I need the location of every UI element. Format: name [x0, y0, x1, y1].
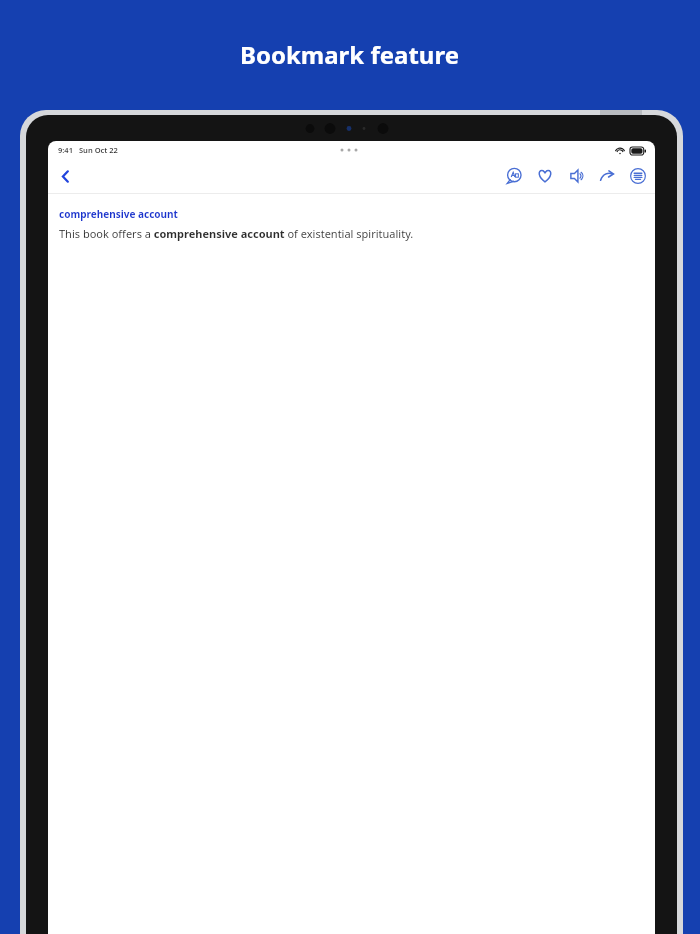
- button[interactable]: Favorite: [534, 165, 556, 187]
- button[interactable]: Table of contents: [627, 165, 649, 187]
- staticText: Bookmark feature: [240, 38, 460, 71]
- button[interactable]: Share: [596, 165, 618, 187]
- staticText: This book offers a comprehensive account…: [59, 226, 414, 241]
- staticText: Sun Oct 22: [79, 145, 118, 155]
- button[interactable]: Translate: [503, 165, 525, 187]
- button[interactable]: comprehensive account: [59, 207, 178, 221]
- staticText: comprehensive account: [59, 207, 178, 221]
- button[interactable]: Back: [52, 163, 78, 189]
- button[interactable]: Read aloud: [565, 165, 587, 187]
- staticText: 9:41: [58, 145, 73, 155]
